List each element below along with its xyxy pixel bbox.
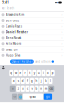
- staticText: m: [45, 87, 47, 90]
- button[interactable]: y: [32, 70, 36, 76]
- button[interactable]: h: [35, 78, 39, 84]
- button[interactable]: o: [46, 70, 50, 76]
- button[interactable]: Elena Novak: [0, 35, 64, 41]
- button[interactable]: i: [41, 70, 45, 76]
- staticText: c: [27, 87, 28, 90]
- staticText: s: [18, 79, 19, 83]
- staticText: f: [27, 79, 28, 83]
- staticText: Daniel Fletcher: [11, 60, 32, 63]
- staticText: 9:41: [2, 1, 9, 4]
- staticText: r: [25, 71, 26, 75]
- staticText: o: [47, 71, 49, 75]
- button[interactable]: a: [12, 78, 16, 84]
- staticText: Ben Ortiz: [6, 19, 19, 22]
- button[interactable]: s: [16, 78, 20, 84]
- button[interactable]: j: [39, 78, 43, 84]
- button[interactable]: z: [16, 86, 20, 92]
- staticText: z: [18, 87, 19, 90]
- button[interactable]: Felix Moore: [0, 41, 64, 46]
- staticText: x: [22, 87, 23, 90]
- button[interactable]: k: [44, 78, 48, 84]
- staticText: ⌫: [49, 87, 53, 90]
- button[interactable]: n: [39, 86, 43, 92]
- staticText: j: [41, 79, 42, 83]
- staticText: w: [15, 71, 17, 75]
- staticText: b: [36, 87, 38, 90]
- button[interactable]: x: [21, 86, 25, 92]
- staticText: 123: [13, 96, 16, 98]
- staticText: Camila Reyes: [6, 25, 22, 28]
- staticText: Elena Novak: [6, 36, 21, 40]
- button[interactable]: ⇧: [10, 86, 16, 92]
- button[interactable]: Hugo Silva: [0, 53, 64, 58]
- button[interactable]: g: [30, 78, 34, 84]
- staticText: Grace Lin: [6, 48, 18, 51]
- button[interactable]: m: [44, 86, 48, 92]
- button[interactable]: b: [35, 86, 39, 92]
- button[interactable]: v: [30, 86, 34, 92]
- button[interactable]: e: [18, 70, 22, 76]
- button[interactable]: go: [44, 94, 52, 100]
- staticText: q: [10, 71, 12, 75]
- button[interactable]: Daniel Fletcher: [0, 29, 64, 35]
- button[interactable]: Daniel Fletcher: [10, 59, 34, 64]
- staticText: ⇧: [12, 87, 14, 90]
- button[interactable]: p: [51, 70, 55, 76]
- button[interactable]: Grace Lin: [0, 47, 64, 52]
- staticText: e: [19, 71, 21, 75]
- button[interactable]: c: [25, 86, 29, 92]
- staticText: g: [31, 79, 33, 83]
- staticText: h: [36, 79, 38, 83]
- staticText: u: [38, 71, 40, 75]
- staticText: space: [29, 95, 36, 98]
- button[interactable]: u: [37, 70, 41, 76]
- button[interactable]: ⌫: [48, 86, 54, 92]
- staticText: Felix Moore: [6, 42, 22, 45]
- staticText: a: [13, 79, 14, 83]
- staticText: p: [52, 71, 54, 75]
- staticText: i: [43, 71, 44, 75]
- button[interactable]: l: [48, 78, 52, 84]
- staticText: l: [50, 79, 51, 83]
- button[interactable]: d: [21, 78, 25, 84]
- button[interactable]: 123: [12, 94, 17, 100]
- staticText: Alexandra Kim: [6, 13, 24, 16]
- button[interactable]: t: [28, 70, 32, 76]
- button[interactable]: r: [23, 70, 27, 76]
- button[interactable]: q: [9, 70, 13, 76]
- staticText: ●●●: [54, 2, 57, 3]
- staticText: 🌐: [18, 95, 21, 98]
- button[interactable]: space: [23, 94, 43, 100]
- staticText: Hugo Silva: [6, 54, 20, 57]
- staticText: d: [22, 79, 24, 83]
- button[interactable]: Ben Ortiz: [0, 18, 64, 23]
- staticText: and others: [35, 60, 50, 63]
- button[interactable]: Alexandra Kim: [0, 12, 64, 17]
- staticText: go: [46, 95, 50, 98]
- staticText: y: [34, 71, 35, 75]
- staticText: Search: [6, 6, 14, 10]
- button[interactable]: f: [25, 78, 29, 84]
- staticText: t: [29, 71, 30, 75]
- button[interactable]: w: [14, 70, 18, 76]
- staticText: Daniel Fletcher: [6, 30, 28, 34]
- button[interactable]: 🌐: [18, 94, 22, 100]
- button[interactable]: Contacts: [2, 66, 5, 69]
- staticText: n: [40, 87, 42, 90]
- button[interactable]: Camila Reyes: [0, 24, 64, 29]
- staticText: k: [45, 79, 46, 83]
- staticText: To:: [1, 6, 5, 10]
